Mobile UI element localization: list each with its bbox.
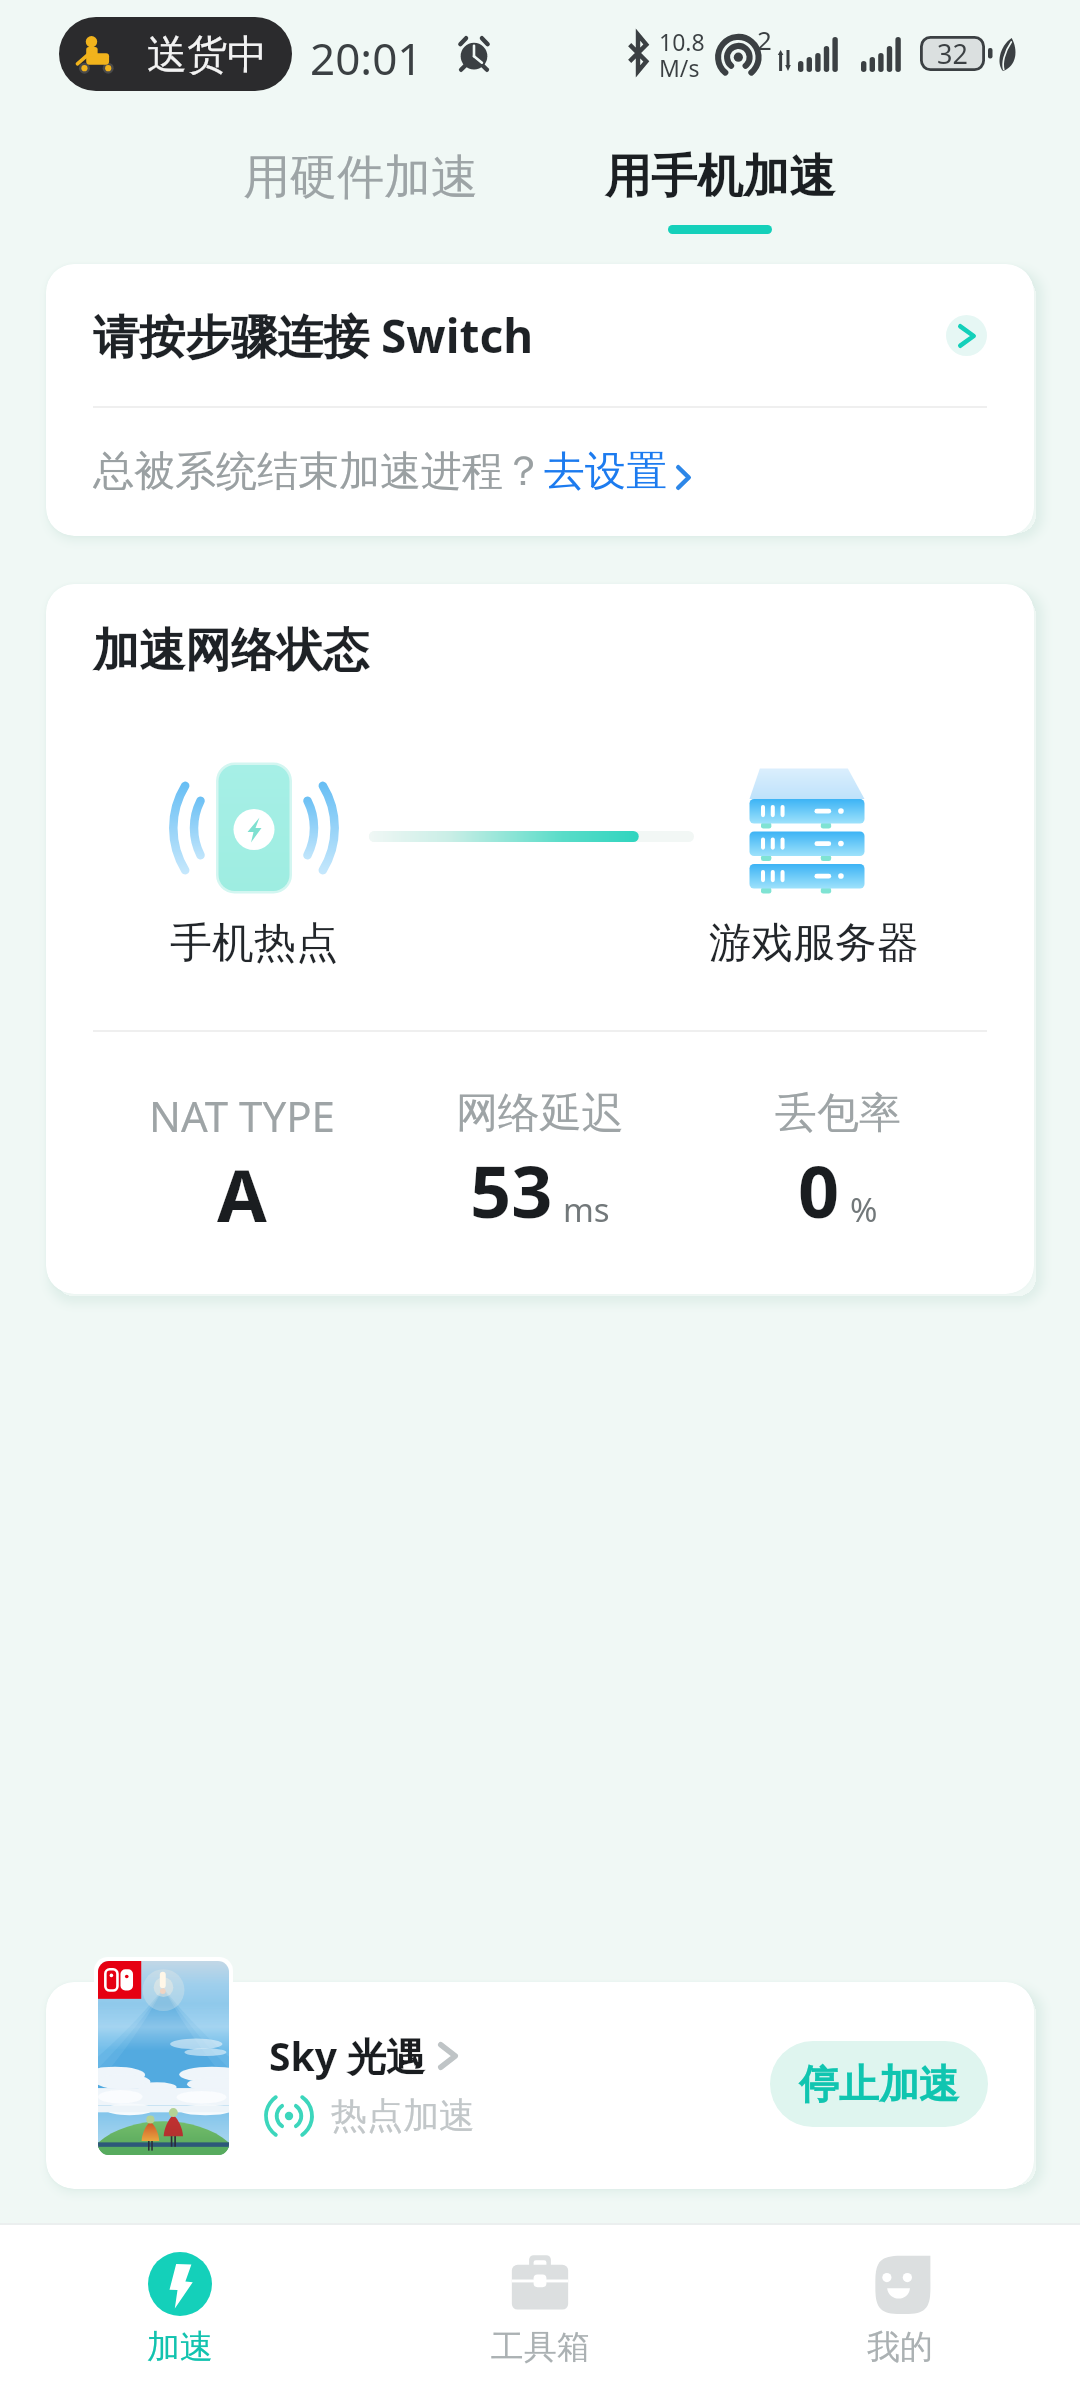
staticText: 手机热点 [170,917,338,970]
staticText: A [217,1145,267,1243]
staticText: 10.8 [659,26,705,57]
staticText: 加速 [147,2326,213,2368]
staticText: 加速网络状态 [93,622,369,680]
staticText: 网络延迟 [456,1087,624,1140]
staticText: NAT TYPE [149,1087,335,1144]
staticText: 53 [470,1141,553,1239]
staticText: 停止加速 [799,2059,959,2109]
staticText: Sky 光遇 [269,2029,426,2082]
button[interactable]: 用硬件加速 [160,148,560,228]
button[interactable]: 加速 [0,2225,360,2387]
staticText: 20:01 [310,28,423,88]
button[interactable]: 停止加速 [770,2041,988,2127]
staticText: % [850,1187,878,1232]
button[interactable]: 用手机加速 [520,148,920,258]
staticText: 工具箱 [491,2326,590,2368]
staticText: 游戏服务器 [709,917,919,970]
button[interactable]: 工具箱 [360,2225,720,2387]
button[interactable]: 总被系统结束加速进程？ [46,408,1034,536]
staticText: M/s [659,52,700,83]
staticText: 去设置 [544,446,667,498]
staticText: 0 [798,1141,840,1239]
staticText: 热点加速 [331,2093,475,2138]
staticText: 丢包率 [775,1087,901,1140]
staticText: 送货中 [147,29,267,79]
button[interactable] [46,1982,1034,2189]
staticText: 请按步骤连接 Switch [93,304,534,367]
staticText: 总被系统结束加速进程？ [93,446,544,498]
staticText: 用硬件加速 [243,148,478,207]
staticText: 32 [937,35,968,70]
button[interactable]: 请按步骤连接 Switch [46,264,1034,406]
staticText: 我的 [867,2326,933,2368]
staticText: 用手机加速 [605,148,835,206]
staticText: ms [563,1187,610,1232]
button[interactable]: 我的 [720,2225,1080,2387]
staticText: 2 [757,22,772,57]
